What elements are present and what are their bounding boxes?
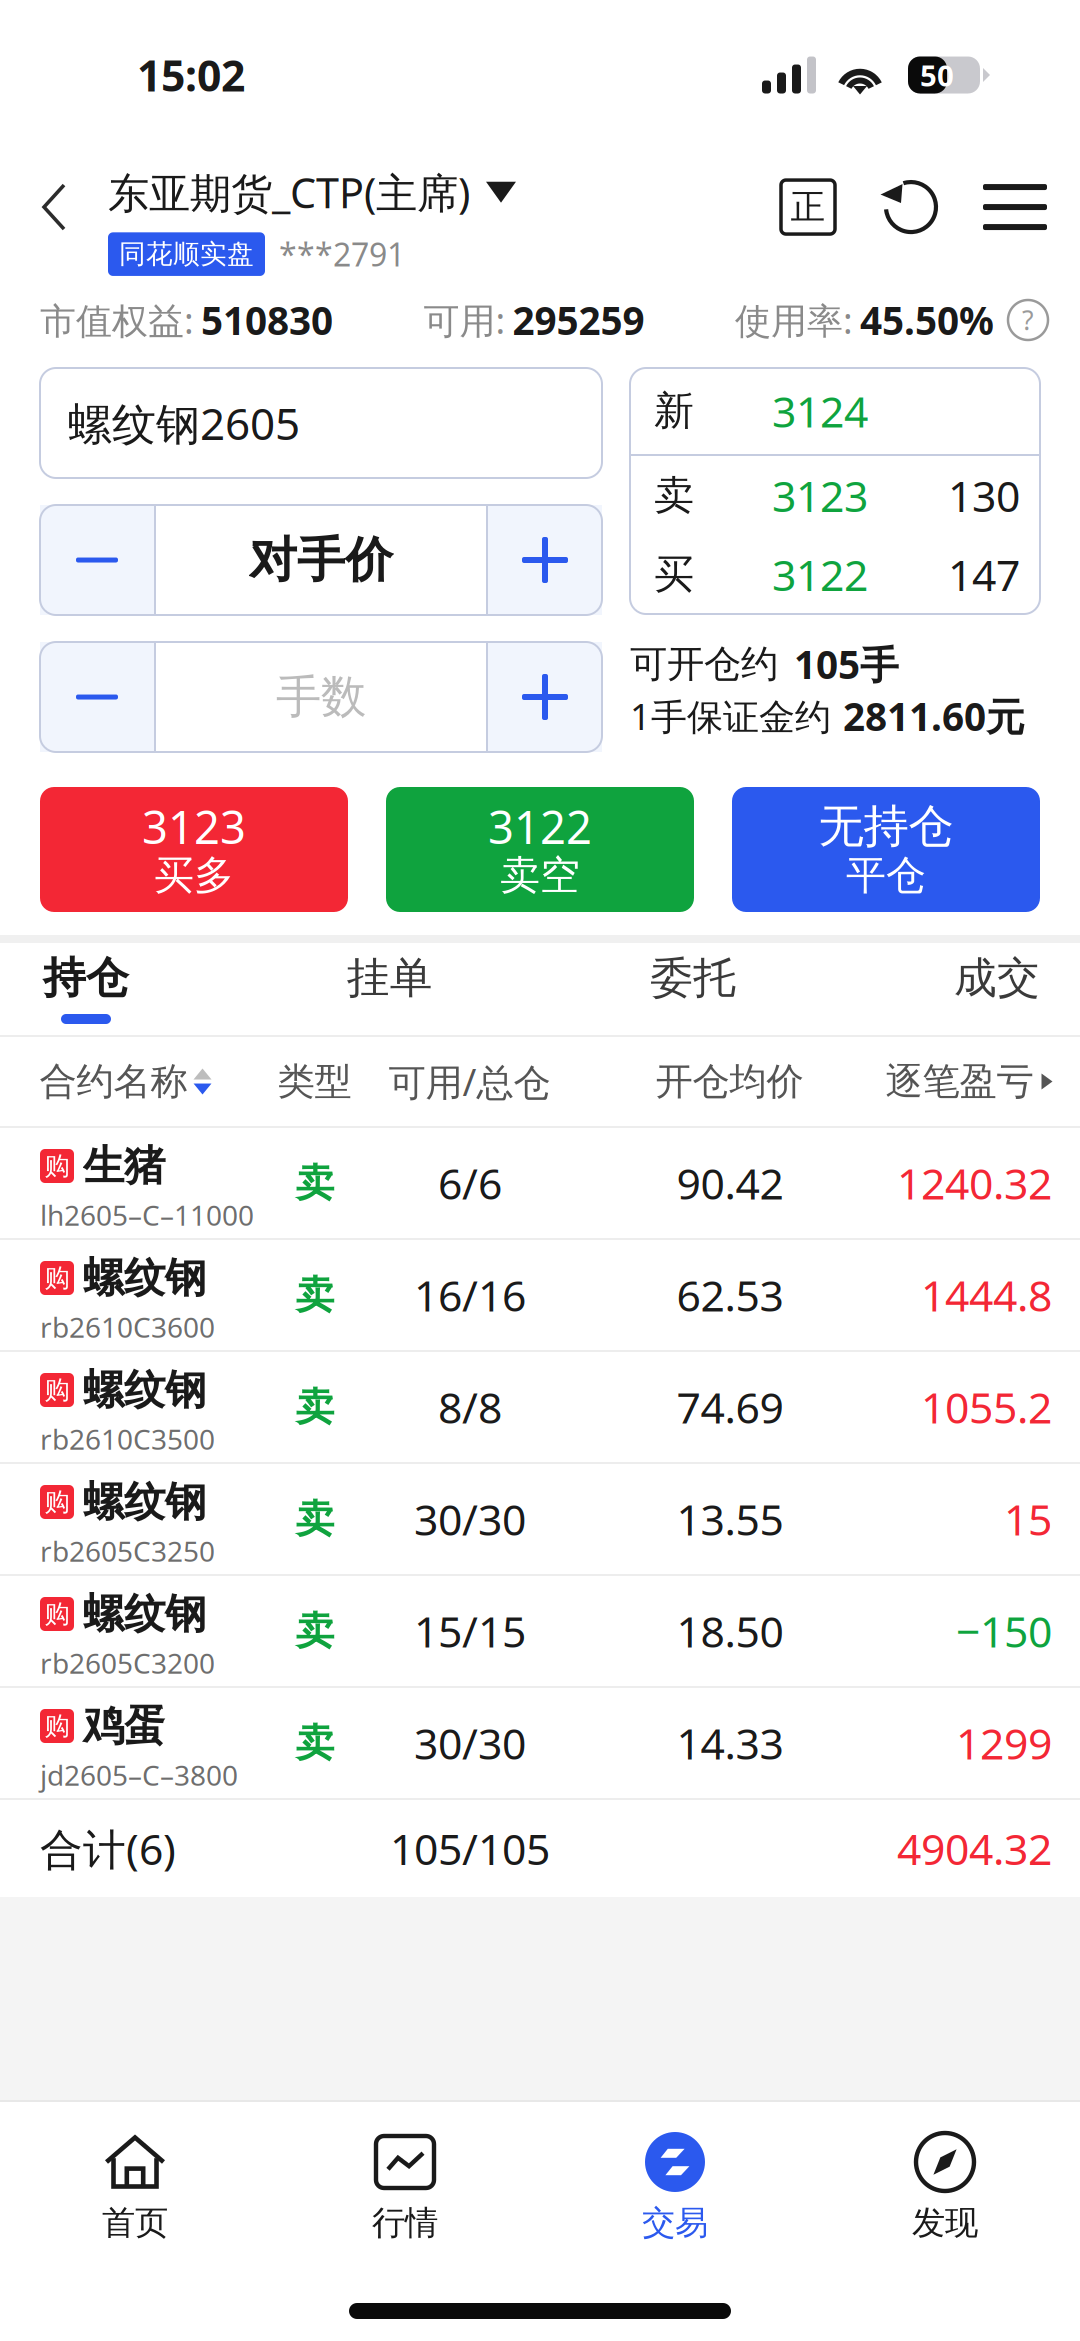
staticText: 90.42: [676, 1154, 783, 1212]
button[interactable]: 东亚期货_CTP(主席): [108, 164, 516, 220]
staticText: 3123: [772, 466, 868, 524]
staticText: 1240.32: [897, 1154, 1052, 1212]
staticText: 74.69: [676, 1378, 783, 1436]
staticText: 4904.32: [897, 1819, 1052, 1877]
staticText: 卖: [295, 1383, 334, 1431]
staticText: 卖: [295, 1159, 334, 1207]
staticText: 15/15: [414, 1602, 526, 1660]
staticText: 1299: [956, 1714, 1052, 1772]
staticText: 105手: [794, 638, 899, 690]
button[interactable]: 首页: [0, 2100, 270, 2266]
staticText: 交易: [642, 2202, 708, 2244]
button[interactable]: 购: [0, 1240, 1080, 1350]
button[interactable]: 成交: [954, 943, 1040, 1037]
staticText: 147: [948, 545, 1020, 603]
staticText: 卖: [295, 1607, 334, 1655]
staticText: rb2605C3250: [40, 1532, 215, 1570]
staticText: 同花顺实盘: [119, 237, 254, 271]
staticText: jd2605–C–3800: [40, 1756, 238, 1794]
staticText: 可用/总仓: [388, 1056, 550, 1107]
staticText: 1055.2: [921, 1378, 1052, 1436]
button[interactable]: 3123: [40, 787, 348, 912]
staticText: 45.50%: [860, 294, 994, 346]
staticText: 东亚期货_CTP(主席): [108, 164, 470, 220]
staticText: 购: [44, 1262, 69, 1294]
staticText: 开仓均价: [655, 1058, 803, 1105]
staticText: 螺纹钢: [83, 1476, 206, 1528]
staticText: 卖: [295, 1271, 334, 1319]
staticText: 购: [44, 1150, 69, 1182]
staticText: 卖: [295, 1495, 334, 1543]
button[interactable]: 返回: [0, 146, 108, 268]
staticText: 发现: [912, 2202, 978, 2244]
staticText: 1444.8: [921, 1266, 1052, 1324]
staticText: −150: [956, 1602, 1052, 1660]
staticText: 鸡蛋: [83, 1700, 165, 1752]
button[interactable]: 持仓: [43, 943, 129, 1037]
button[interactable]: 购: [0, 1352, 1080, 1462]
button[interactable]: 减少: [40, 505, 154, 615]
button[interactable]: 交易: [540, 2100, 810, 2266]
button[interactable]: 刷新: [856, 146, 966, 268]
staticText: 挂单: [347, 951, 433, 1005]
button[interactable]: 发现: [810, 2100, 1080, 2266]
button[interactable]: 购: [0, 1688, 1080, 1798]
staticText: 持仓: [43, 951, 129, 1005]
staticText: 295259: [512, 294, 644, 346]
staticText: 类型: [277, 1058, 351, 1105]
staticText: 105/105: [390, 1819, 550, 1877]
staticText: 买多: [154, 850, 234, 901]
staticText: 1手保证金约: [630, 691, 831, 740]
staticText: 生猪: [83, 1140, 165, 1192]
staticText: 合约名称: [39, 1058, 187, 1105]
button[interactable]: 菜单: [966, 146, 1064, 268]
staticText: 螺纹钢: [83, 1588, 206, 1640]
button[interactable]: 无持仓: [732, 787, 1040, 912]
button[interactable]: 3122: [386, 787, 694, 912]
staticText: 30/30: [414, 1490, 526, 1548]
staticText: rb2605C3200: [40, 1644, 215, 1682]
button[interactable]: 止盈止损: [760, 146, 856, 268]
button[interactable]: 购: [0, 1464, 1080, 1574]
staticText: 购: [44, 1486, 69, 1518]
staticText: 购: [44, 1710, 69, 1742]
staticText: 正: [790, 185, 825, 229]
staticText: 3124: [772, 382, 868, 440]
staticText: 8/8: [438, 1378, 502, 1436]
staticText: 无持仓: [818, 798, 953, 855]
button[interactable]: 购: [0, 1576, 1080, 1686]
staticText: 18.50: [676, 1602, 783, 1660]
button[interactable]: 减少: [40, 642, 154, 752]
staticText: 2811.60元: [843, 690, 1025, 742]
staticText: 可开仓约: [630, 640, 778, 687]
staticText: 15: [1004, 1490, 1052, 1548]
staticText: 市值权益:: [40, 295, 194, 344]
staticText: 510830: [201, 294, 333, 346]
staticText: 委托: [650, 951, 736, 1005]
staticText: 16/16: [414, 1266, 526, 1324]
button[interactable]: 购: [0, 1128, 1080, 1238]
staticText: 3122: [488, 796, 592, 857]
button[interactable]: 增加: [488, 642, 602, 752]
staticText: 130: [948, 466, 1020, 524]
staticText: 首页: [102, 2202, 168, 2244]
staticText: 螺纹钢: [83, 1364, 206, 1416]
staticText: 卖: [295, 1719, 334, 1767]
button[interactable]: 委托: [650, 943, 736, 1037]
staticText: ***2791: [279, 232, 405, 276]
staticText: 6/6: [438, 1154, 502, 1212]
button[interactable]: 行情: [270, 2100, 540, 2266]
staticText: 卖空: [500, 850, 580, 901]
staticText: rb2610C3500: [40, 1420, 215, 1458]
staticText: 13.55: [676, 1490, 783, 1548]
staticText: 30/30: [414, 1714, 526, 1772]
button[interactable]: 增加: [488, 505, 602, 615]
staticText: 14.33: [676, 1714, 783, 1772]
staticText: rb2610C3600: [40, 1308, 215, 1346]
staticText: 买: [654, 549, 694, 600]
staticText: 对手价: [249, 530, 393, 590]
staticText: 购: [44, 1374, 69, 1406]
button[interactable]: 挂单: [347, 943, 433, 1037]
staticText: 逐笔盈亏: [885, 1058, 1033, 1105]
staticText: 62.53: [676, 1266, 783, 1324]
